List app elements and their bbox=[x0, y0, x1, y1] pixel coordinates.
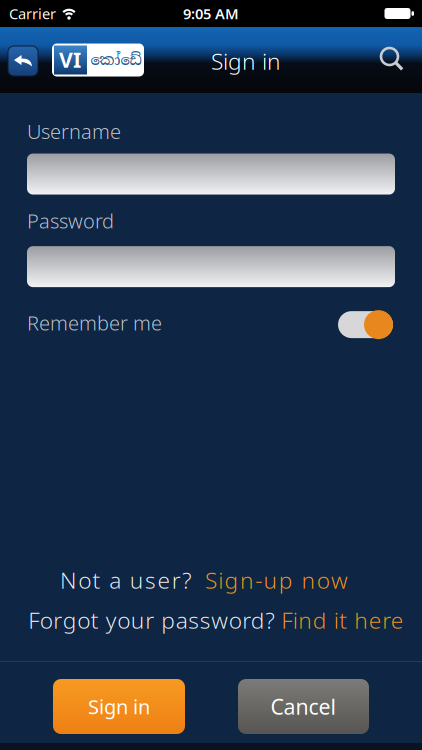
staticText: Forgot your password? bbox=[28, 605, 275, 635]
staticText: Cancel bbox=[270, 692, 336, 721]
staticText: Username bbox=[27, 118, 121, 145]
button[interactable]: Back bbox=[8, 46, 38, 76]
button[interactable]: Home bbox=[52, 43, 144, 76]
button[interactable]: Username bbox=[27, 154, 395, 195]
button[interactable]: Sign in bbox=[53, 679, 185, 734]
staticText: 9:05 AM bbox=[183, 4, 239, 23]
staticText: VI bbox=[59, 45, 81, 74]
button[interactable]: Remember me bbox=[338, 310, 393, 339]
button[interactable]: Search bbox=[380, 47, 404, 71]
button[interactable]: Password bbox=[27, 246, 395, 287]
staticText: Sign in bbox=[211, 46, 281, 76]
button[interactable]: Cancel bbox=[238, 679, 369, 734]
staticText: Password bbox=[27, 208, 114, 234]
staticText: Not a user? bbox=[60, 565, 192, 595]
staticText: Carrier bbox=[9, 4, 56, 23]
staticText: Sign in bbox=[88, 693, 150, 720]
staticText: Find it here bbox=[281, 605, 404, 635]
button[interactable]: Not a user? bbox=[67, 565, 355, 595]
staticText: Remember me bbox=[27, 309, 162, 336]
button[interactable]: Forgot your password? bbox=[23, 605, 399, 635]
staticText: කෝඩේ bbox=[90, 51, 141, 69]
staticText: Sign-up now bbox=[205, 565, 348, 595]
